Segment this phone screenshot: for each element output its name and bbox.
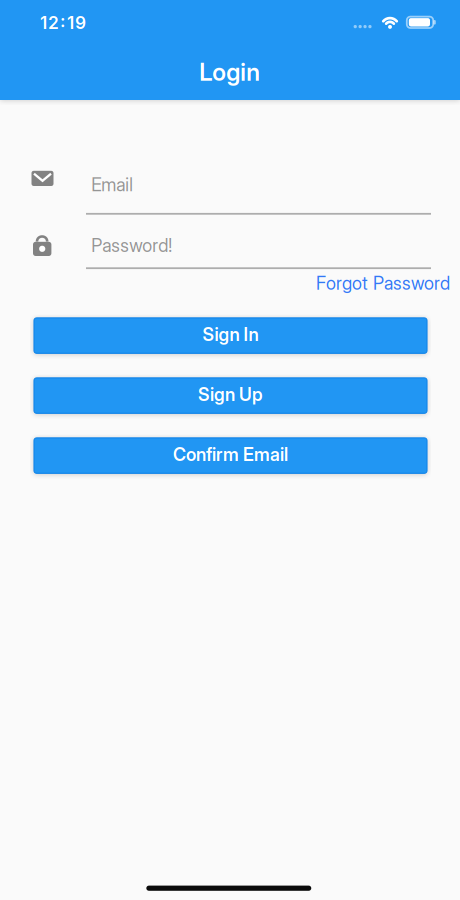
button[interactable]: Forgot Password [316,272,450,294]
button[interactable]: Sign In [34,318,427,353]
button[interactable]: Sign Up [34,378,427,413]
button[interactable]: Confirm Email [34,438,427,473]
button[interactable]: Password! [31,228,431,269]
staticText: Login [199,57,260,86]
staticText: 1 2 : 1 9 [40,12,86,33]
staticText: Sign Up [198,383,263,405]
staticText: Sign In [202,323,258,345]
staticText: Confirm Email [173,443,288,465]
staticText: Email [91,174,133,195]
staticText: Password! [91,234,172,256]
button[interactable]: Email [31,164,431,216]
staticText: Forgot Password [316,272,450,294]
